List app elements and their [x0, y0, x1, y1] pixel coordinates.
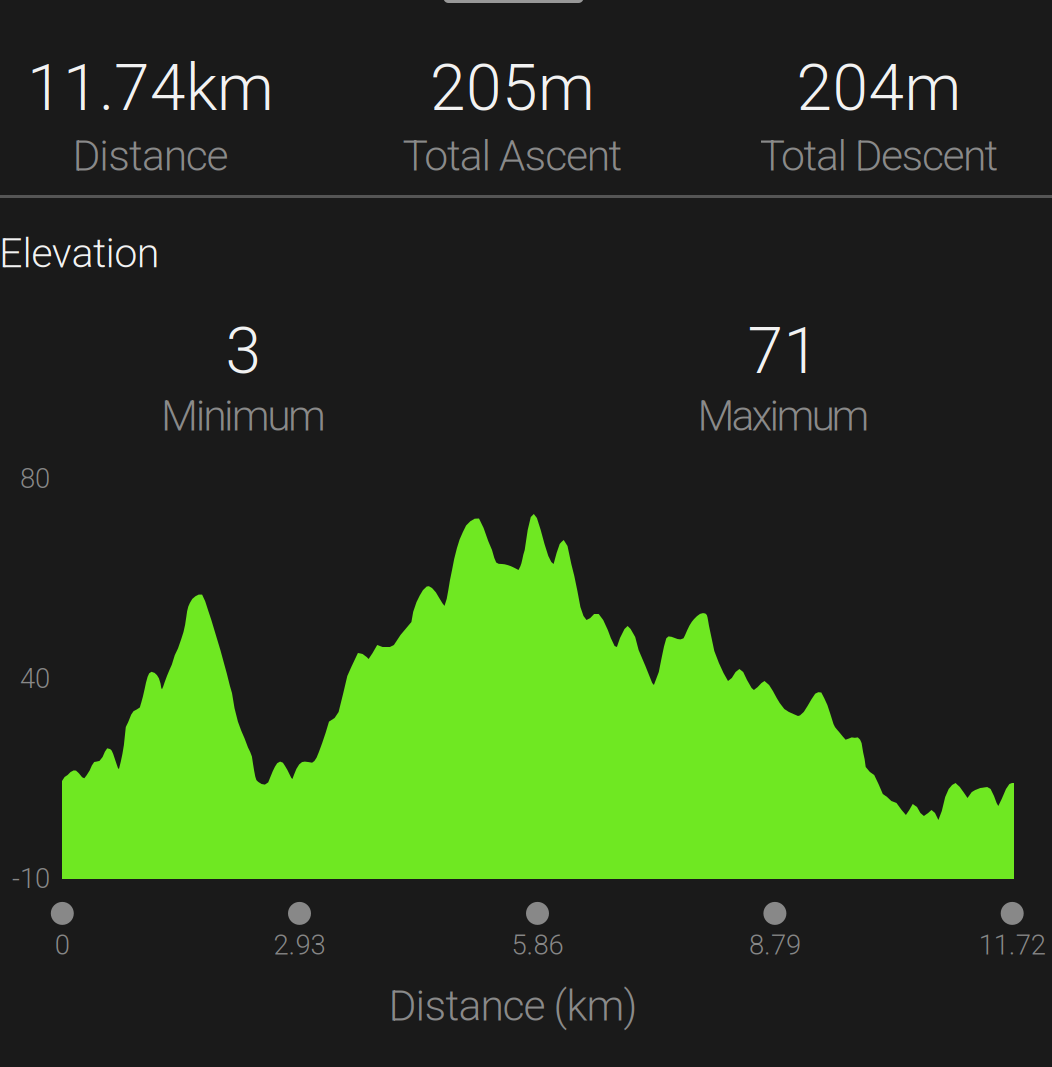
staticText: Distance (km) [388, 981, 637, 1031]
staticText: 3 [225, 313, 261, 388]
staticText: 11.74km [27, 50, 274, 125]
staticText: 204m [796, 50, 961, 125]
staticText: 71 [747, 313, 819, 388]
staticText: Elevation [0, 229, 160, 277]
staticText: Distance [72, 131, 228, 181]
staticText: 8.79 [749, 929, 801, 961]
staticText: 0 [55, 929, 70, 961]
staticText: 2.93 [273, 929, 325, 961]
staticText: 40 [20, 662, 50, 695]
staticText: Total Ascent [402, 131, 622, 181]
staticText: 80 [20, 462, 50, 495]
staticText: Maximum [697, 391, 869, 441]
button[interactable]: Drag to resize sheet [443, 0, 583, 3]
staticText: -10 [12, 862, 50, 895]
staticText: Minimum [161, 391, 326, 441]
staticText: 5.86 [511, 929, 563, 961]
staticText: Total Descent [759, 131, 998, 181]
staticText: 205m [430, 50, 595, 125]
staticText: 11.72 [979, 929, 1046, 961]
